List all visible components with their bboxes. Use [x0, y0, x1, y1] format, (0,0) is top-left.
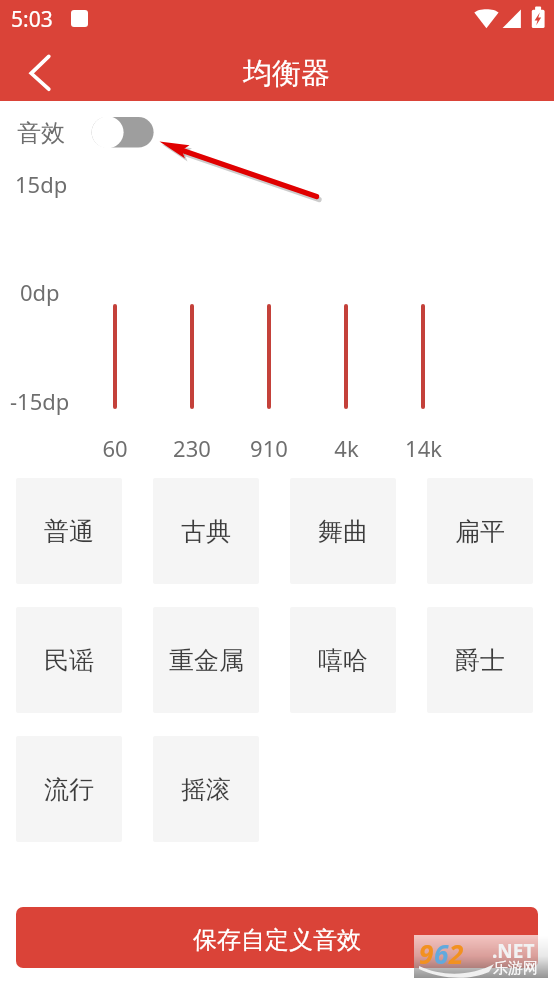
staticText: 910	[250, 433, 288, 463]
staticText: 民谣	[44, 645, 94, 676]
staticText: 60	[102, 433, 128, 463]
staticText: 均衡器	[243, 55, 330, 92]
staticText: 6	[434, 936, 449, 971]
staticText: .NET	[492, 938, 535, 964]
button[interactable]: 重金属	[153, 607, 259, 713]
staticText: 14k	[405, 433, 442, 463]
staticText: 舞曲	[318, 516, 368, 547]
staticText: 爵士	[455, 645, 505, 676]
staticText: 15dp	[15, 169, 68, 199]
button[interactable]: 古典	[153, 478, 259, 584]
button[interactable]: 流行	[16, 736, 122, 842]
button[interactable]: 舞曲	[290, 478, 396, 584]
staticText: 保存自定义音效	[193, 925, 361, 955]
staticText: 音效	[17, 118, 65, 148]
staticText: 摇滚	[181, 774, 231, 805]
staticText: 230	[173, 433, 211, 463]
staticText: 普通	[44, 516, 94, 547]
staticText: 扁平	[455, 516, 505, 547]
staticText: 乐游网	[493, 959, 538, 978]
staticText: 古典	[181, 516, 231, 547]
staticText: 4k	[334, 433, 359, 463]
staticText: 0dp	[20, 277, 60, 307]
staticText: 重金属	[169, 645, 244, 676]
button[interactable]: 保存自定义音效	[16, 907, 538, 968]
staticText: 2	[449, 936, 464, 971]
button[interactable]: 摇滚	[153, 736, 259, 842]
staticText: -15dp	[10, 386, 70, 416]
button[interactable]: 爵士	[427, 607, 533, 713]
button[interactable]: Sound effect toggle	[91, 115, 155, 149]
staticText: 流行	[44, 774, 94, 805]
staticText: 9	[419, 936, 434, 971]
button[interactable]: 扁平	[427, 478, 533, 584]
staticText: 5:03	[11, 5, 53, 34]
button[interactable]: 民谣	[16, 607, 122, 713]
button[interactable]: Back	[12, 41, 68, 97]
button[interactable]: 普通	[16, 478, 122, 584]
staticText: 嘻哈	[318, 645, 368, 676]
button[interactable]: 嘻哈	[290, 607, 396, 713]
